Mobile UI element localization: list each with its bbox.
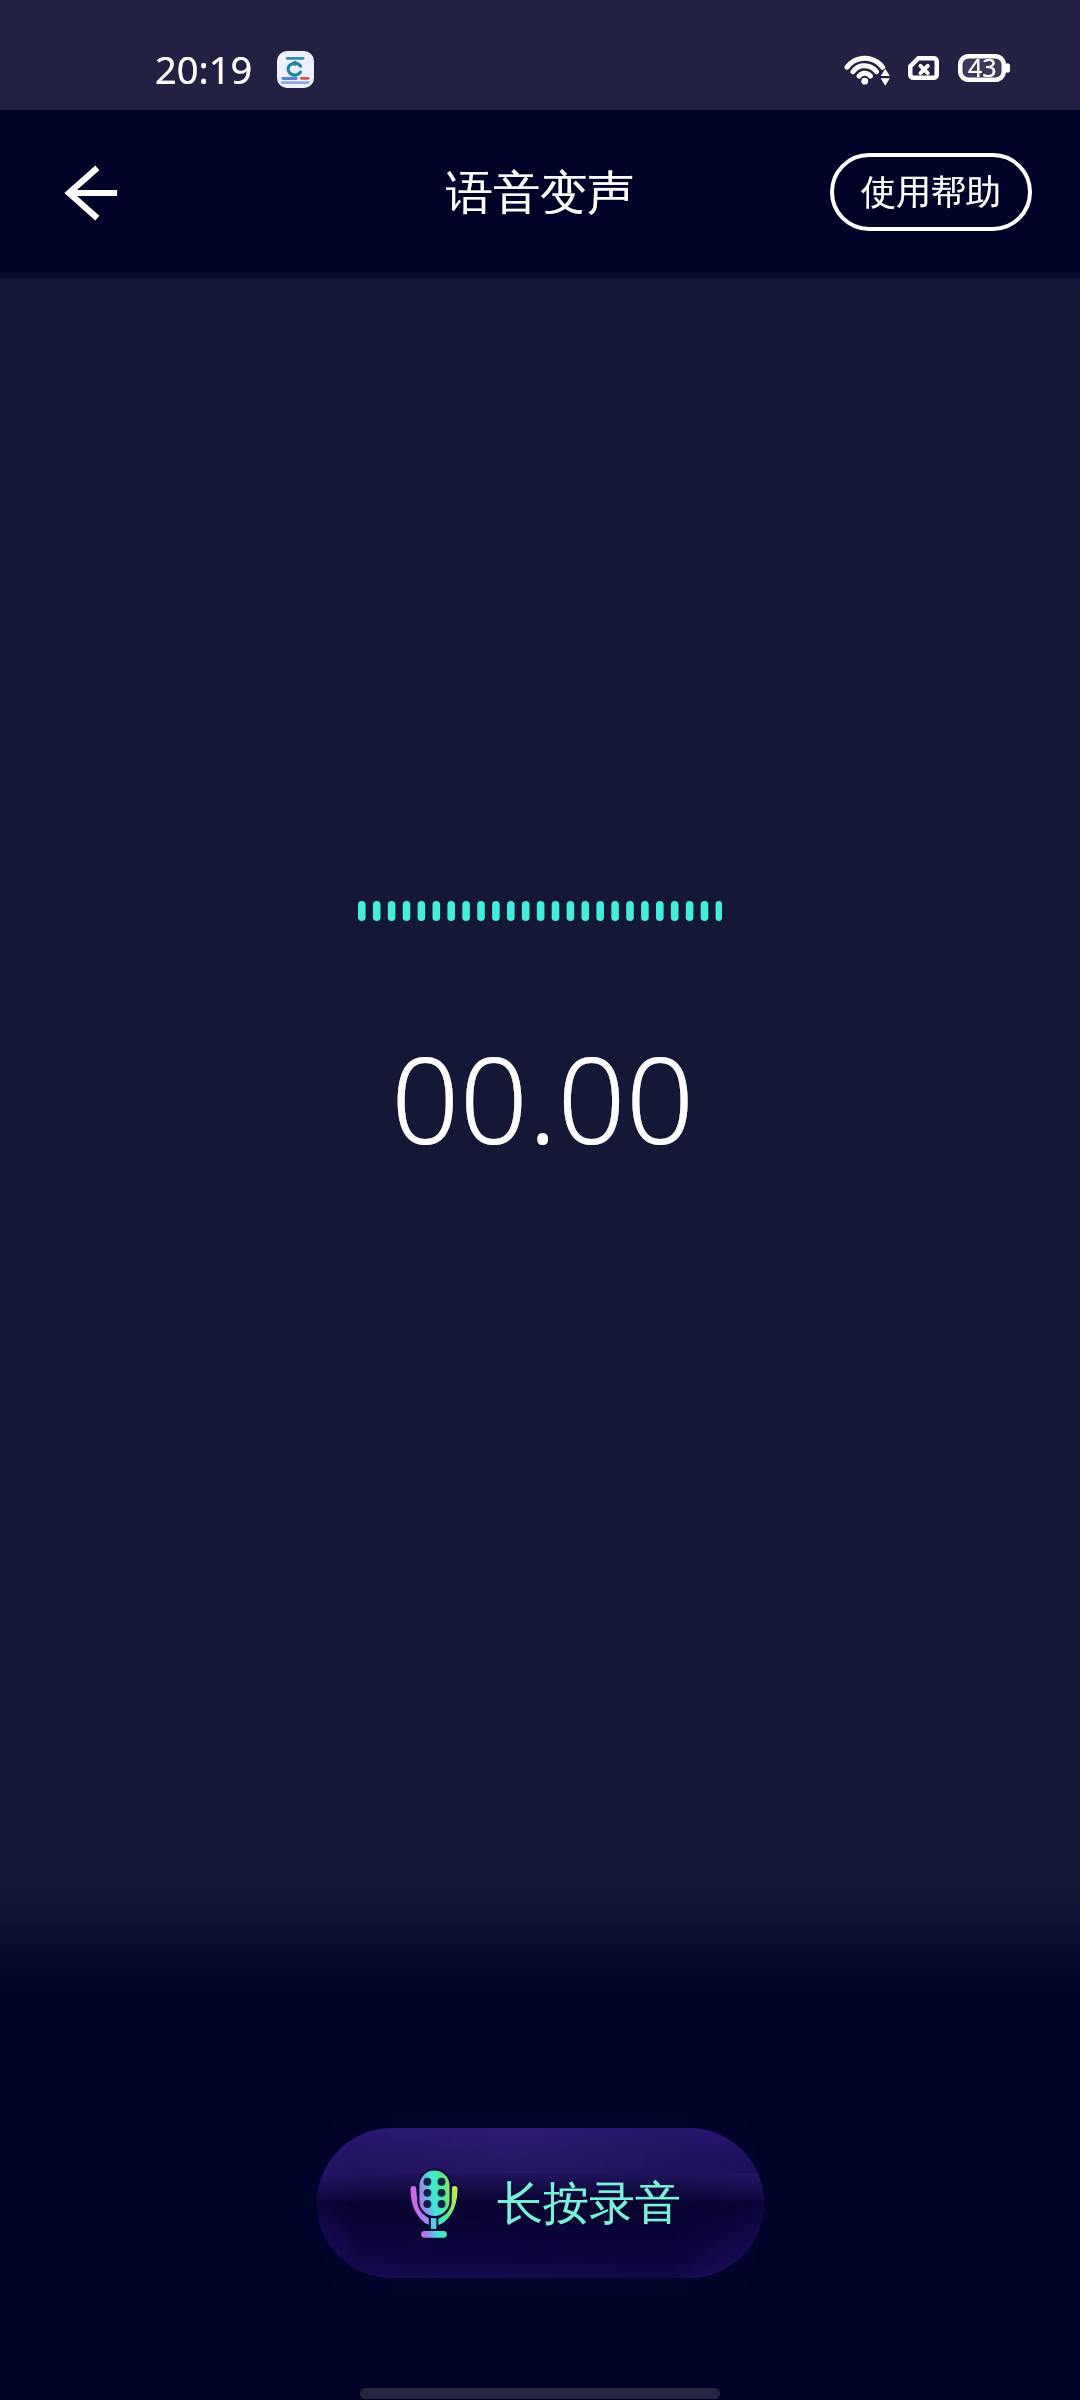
staticText: 语音变声 bbox=[446, 164, 634, 223]
staticText: 43 bbox=[968, 50, 997, 84]
button[interactable]: 使用帮助 bbox=[830, 153, 1032, 231]
staticText: 20:19 bbox=[155, 43, 253, 95]
staticText: 长按录音 bbox=[497, 2175, 681, 2233]
button[interactable]: 长按录音 bbox=[317, 2128, 764, 2278]
staticText: 00.00 bbox=[391, 1016, 695, 1179]
button[interactable]: Back bbox=[32, 139, 144, 251]
staticText: 使用帮助 bbox=[861, 170, 1001, 214]
